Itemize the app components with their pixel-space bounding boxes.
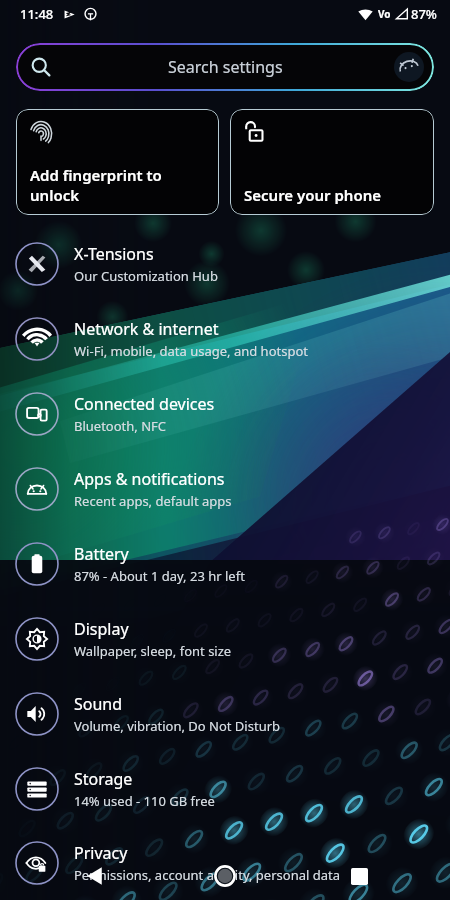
- button[interactable]: Add fingerprint to unlock: [16, 109, 219, 215]
- button[interactable]: Battery: [0, 526, 450, 601]
- staticText: Battery: [74, 543, 129, 565]
- button[interactable]: Connected devices: [0, 376, 450, 451]
- staticText: Apps & notifications: [74, 468, 225, 490]
- staticText: Search settings: [168, 56, 283, 78]
- staticText: Network & internet: [74, 318, 219, 340]
- staticText: Bluetooth, NFC: [74, 417, 167, 435]
- staticText: Our Customization Hub: [74, 267, 218, 285]
- staticText: 87%: [411, 5, 437, 23]
- button[interactable]: Sound: [0, 676, 450, 751]
- staticText: Wallpaper, sleep, font size: [74, 642, 232, 660]
- staticText: Permissions, account activity, personal …: [74, 866, 340, 884]
- staticText: Connected devices: [74, 393, 215, 415]
- staticText: Volume, vibration, Do Not Disturb: [74, 717, 281, 735]
- staticText: Secure your phone: [244, 185, 382, 205]
- button[interactable]: X-Tensions: [0, 226, 450, 301]
- button[interactable]: Display: [0, 601, 450, 676]
- staticText: Sound: [74, 693, 123, 715]
- button[interactable]: Recent apps: [351, 868, 368, 885]
- staticText: 11:48: [20, 5, 54, 23]
- staticText: Display: [74, 618, 129, 640]
- button[interactable]: Home: [213, 864, 237, 888]
- staticText: 87% - About 1 day, 23 hr left: [74, 567, 245, 585]
- button[interactable]: Apps & notifications: [0, 451, 450, 526]
- staticText: Add fingerprint to unlock: [30, 165, 162, 205]
- staticText: Wi-Fi, mobile, data usage, and hotspot: [74, 342, 308, 360]
- button[interactable]: Account: [394, 52, 424, 82]
- button[interactable]: Back: [82, 863, 108, 889]
- button[interactable]: Storage: [0, 751, 450, 826]
- button[interactable]: Secure your phone: [230, 109, 434, 215]
- other: Search: [30, 56, 52, 78]
- staticText: X-Tensions: [74, 243, 154, 265]
- staticText: 14% used - 110 GB free: [74, 792, 215, 810]
- button[interactable]: Search: [16, 43, 434, 91]
- staticText: Storage: [74, 768, 133, 790]
- staticText: Vo: [378, 7, 391, 21]
- staticText: Privacy: [74, 842, 128, 864]
- button[interactable]: Privacy: [0, 826, 450, 900]
- button[interactable]: Network & internet: [0, 301, 450, 376]
- staticText: Recent apps, default apps: [74, 492, 232, 510]
